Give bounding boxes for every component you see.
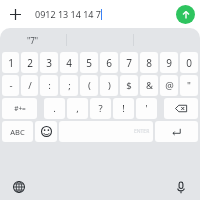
button[interactable]: " bbox=[180, 75, 198, 96]
button[interactable]: 4 bbox=[60, 52, 78, 73]
button[interactable]: , bbox=[67, 98, 88, 119]
button[interactable]: 1 bbox=[2, 52, 19, 73]
staticText: 4 bbox=[66, 56, 72, 70]
button[interactable]: ABC bbox=[2, 121, 33, 142]
staticText: 2 bbox=[27, 56, 33, 70]
staticText: 7 bbox=[126, 56, 132, 70]
staticText: ; bbox=[68, 79, 71, 92]
button[interactable]: ) bbox=[100, 75, 118, 96]
staticText: ? bbox=[98, 102, 103, 115]
button[interactable]: @ bbox=[160, 75, 178, 96]
button[interactable]: Send bbox=[176, 5, 195, 24]
button[interactable]: 5 bbox=[80, 52, 98, 73]
staticText: 5 bbox=[86, 56, 92, 70]
staticText: : bbox=[48, 79, 51, 92]
button[interactable]: . bbox=[44, 98, 65, 119]
button[interactable]: #+= bbox=[2, 98, 37, 119]
button[interactable]: ( bbox=[80, 75, 98, 96]
button[interactable]: ' bbox=[136, 98, 157, 119]
button[interactable]: 0912 13 14 14 7 bbox=[29, 4, 172, 24]
button[interactable]: 8 bbox=[140, 52, 158, 73]
button[interactable]: & bbox=[140, 75, 158, 96]
button[interactable] bbox=[134, 28, 200, 52]
button[interactable]: - bbox=[2, 75, 19, 96]
staticText: #+= bbox=[14, 104, 26, 113]
staticText: $ bbox=[126, 79, 132, 92]
button[interactable]: 9 bbox=[160, 52, 178, 73]
button[interactable]: 3 bbox=[40, 52, 58, 73]
button[interactable]: Change keyboard language bbox=[11, 179, 27, 195]
staticText: "7" bbox=[27, 35, 39, 46]
staticText: ) bbox=[108, 79, 111, 92]
button[interactable]: 7 bbox=[120, 52, 138, 73]
button[interactable]: Add attachment bbox=[5, 4, 25, 24]
button[interactable]: ! bbox=[113, 98, 134, 119]
button[interactable]: : bbox=[40, 75, 58, 96]
button[interactable]: 2 bbox=[21, 52, 38, 73]
button[interactable]: 6 bbox=[100, 52, 118, 73]
button[interactable]: Space bbox=[59, 121, 153, 142]
staticText: & bbox=[146, 79, 153, 92]
button[interactable]: Enter bbox=[155, 121, 198, 142]
staticText: 6 bbox=[106, 56, 112, 70]
staticText: / bbox=[28, 79, 32, 92]
staticText: 0912 13 14 14 7 bbox=[35, 8, 101, 20]
button[interactable]: $ bbox=[120, 75, 138, 96]
staticText: 9 bbox=[166, 56, 172, 70]
staticText: ! bbox=[122, 102, 125, 115]
staticText: ( bbox=[88, 79, 91, 92]
staticText: 1 bbox=[8, 56, 14, 70]
staticText: " bbox=[187, 79, 191, 92]
staticText: ENTER bbox=[134, 128, 150, 135]
staticText: @ bbox=[165, 79, 174, 92]
staticText: , bbox=[76, 102, 79, 115]
staticText: - bbox=[9, 79, 13, 92]
button[interactable]: Voice input bbox=[173, 179, 189, 195]
staticText: . bbox=[53, 102, 56, 115]
button[interactable]: "7" bbox=[0, 28, 66, 52]
button[interactable]: ? bbox=[90, 98, 111, 119]
button[interactable]: ; bbox=[60, 75, 78, 96]
button[interactable]: / bbox=[21, 75, 38, 96]
button[interactable]: Emoji bbox=[35, 121, 57, 142]
staticText: 3 bbox=[46, 56, 52, 70]
button[interactable]: Backspace bbox=[164, 98, 198, 119]
button[interactable]: 0 bbox=[180, 52, 198, 73]
staticText: 0 bbox=[186, 56, 192, 70]
staticText: 8 bbox=[146, 56, 152, 70]
staticText: ABC bbox=[10, 127, 25, 137]
staticText: ' bbox=[145, 102, 148, 115]
